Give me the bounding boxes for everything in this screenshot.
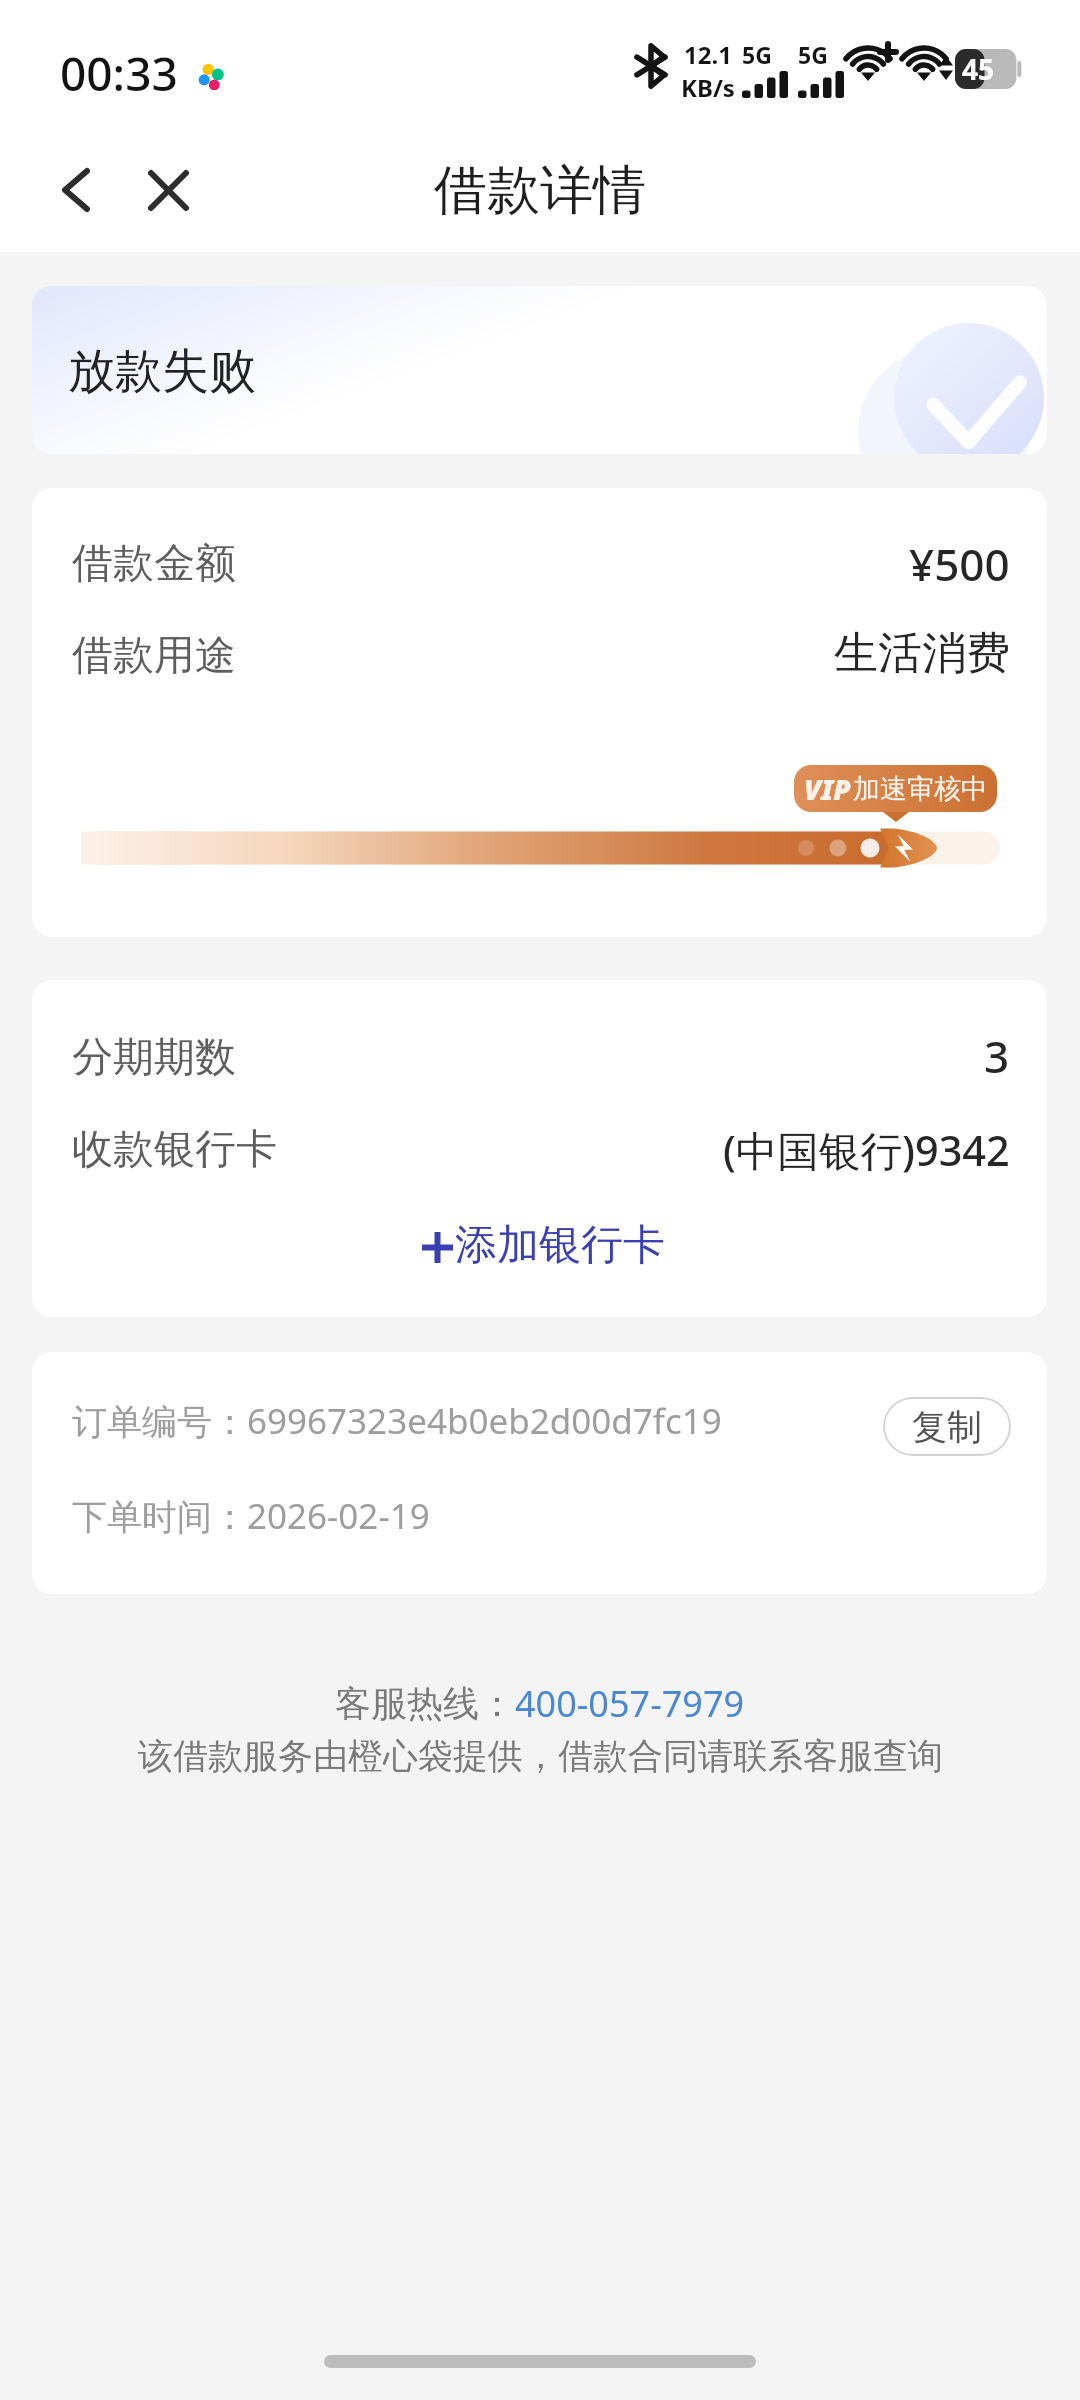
button[interactable]: Close xyxy=(133,155,203,225)
button[interactable]: Back xyxy=(40,155,110,225)
staticText: KB/s xyxy=(681,71,735,104)
staticText: 5G xyxy=(742,39,772,70)
staticText: 收款银行卡 xyxy=(72,1124,277,1176)
staticText: 00:33 xyxy=(60,42,178,105)
staticText: 加速审核中 xyxy=(853,772,988,806)
staticText: 借款详情 xyxy=(434,157,646,224)
staticText: VIP xyxy=(804,770,851,808)
staticText: 添加银行卡 xyxy=(455,1219,665,1272)
staticText: 复制 xyxy=(912,1405,982,1449)
staticText: 生活消费 xyxy=(834,626,1010,681)
staticText: 放款失败 xyxy=(68,342,256,401)
button[interactable]: 添加银行卡 xyxy=(32,1185,1047,1305)
button[interactable]: 复制 xyxy=(883,1397,1011,1456)
staticText: 该借款服务由橙心袋提供，借款合同请联系客服查询 xyxy=(138,1734,943,1778)
staticText: 借款金额 xyxy=(72,538,236,590)
staticText: 客服热线： xyxy=(335,1681,515,1726)
staticText: 订单编号：69967323e4b0eb2d00d7fc19 xyxy=(72,1397,722,1445)
staticText: 借款用途 xyxy=(72,630,236,682)
staticText: 分期期数 xyxy=(72,1032,236,1084)
staticText: (中国银行)9342 xyxy=(723,1122,1010,1179)
staticText: 3 xyxy=(984,1026,1010,1086)
staticText: ¥500 xyxy=(909,534,1010,594)
staticText: 5G xyxy=(798,39,828,70)
staticText: 45 xyxy=(962,50,995,88)
button[interactable]: 400-057-7979 xyxy=(515,1679,745,1728)
staticText: 下单时间：2026-02-19 xyxy=(72,1492,430,1540)
staticText: 12.1 xyxy=(684,38,732,71)
